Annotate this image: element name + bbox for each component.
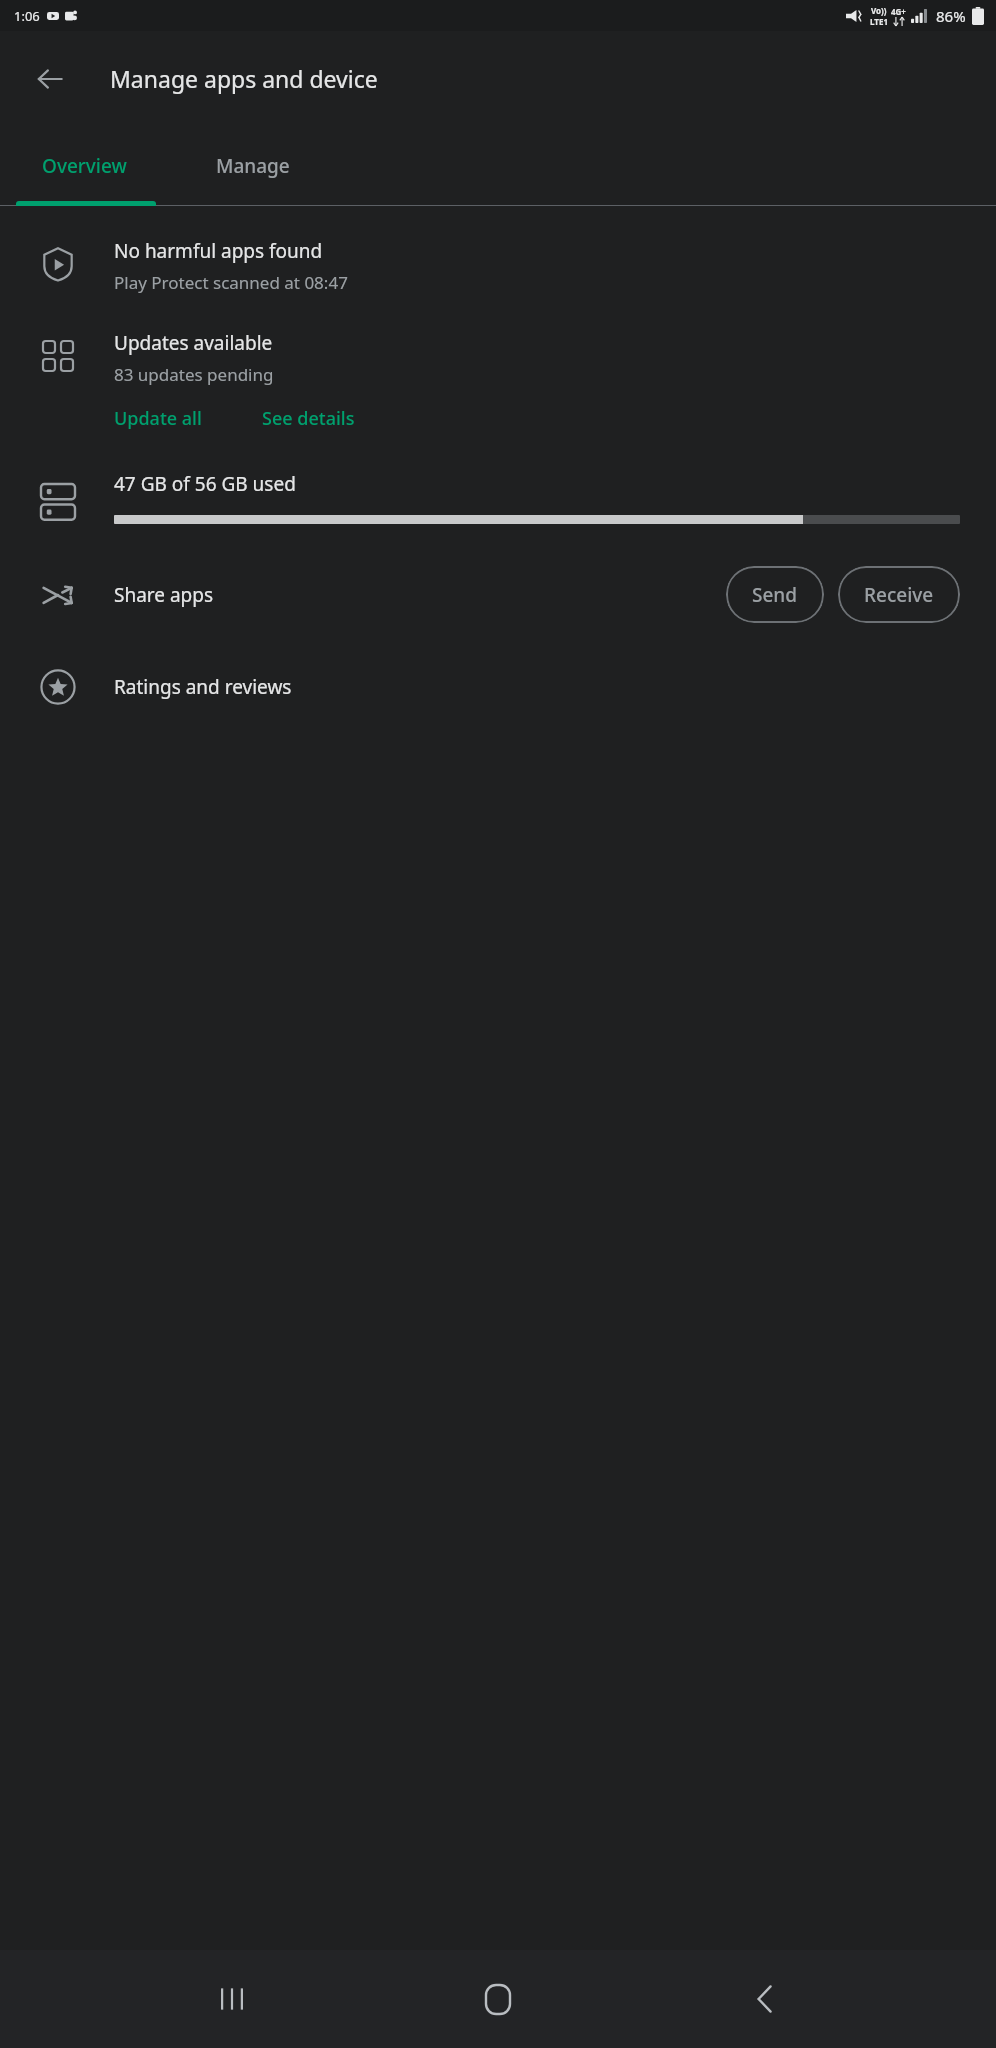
staticText: Update all xyxy=(114,406,202,431)
staticText: Overview xyxy=(42,153,127,179)
button[interactable]: Back xyxy=(24,53,76,105)
staticText: 86% xyxy=(936,6,966,26)
button[interactable]: Update all xyxy=(114,406,202,431)
button[interactable]: Back xyxy=(730,1964,800,2034)
staticText: Updates available xyxy=(114,330,273,356)
staticText: 1:06 xyxy=(14,7,40,25)
button[interactable]: Recent apps xyxy=(197,1964,267,2034)
button[interactable]: See details xyxy=(262,406,355,431)
staticText: 47 GB of 56 GB used xyxy=(114,471,296,497)
staticText: LTE1 xyxy=(870,16,888,27)
staticText: 83 updates pending xyxy=(114,363,274,386)
staticText: See details xyxy=(262,406,355,431)
staticText: Receive xyxy=(864,582,934,608)
staticText: Vo)) xyxy=(871,5,887,16)
staticText: Manage xyxy=(216,153,290,179)
staticText: Ratings and reviews xyxy=(114,674,292,700)
button[interactable]: 47 GB of 56 GB used xyxy=(0,471,996,524)
button[interactable]: No harmful apps found xyxy=(0,238,996,294)
button[interactable]: Ratings and reviews xyxy=(0,667,996,707)
staticText: Share apps xyxy=(114,582,726,608)
button[interactable]: Overview xyxy=(0,126,168,206)
staticText: No harmful apps found xyxy=(114,238,323,264)
staticText: Send xyxy=(752,582,798,608)
button[interactable]: Manage xyxy=(168,126,338,206)
button[interactable]: Updates available xyxy=(0,330,996,431)
button[interactable]: Share apps xyxy=(0,566,996,623)
button[interactable]: Send xyxy=(726,566,824,623)
staticText: Manage apps and device xyxy=(110,63,378,94)
staticText: 4G+ xyxy=(891,6,906,17)
staticText: Play Protect scanned at 08:47 xyxy=(114,271,348,294)
button[interactable]: Receive xyxy=(838,566,960,623)
button[interactable]: Home xyxy=(463,1964,533,2034)
